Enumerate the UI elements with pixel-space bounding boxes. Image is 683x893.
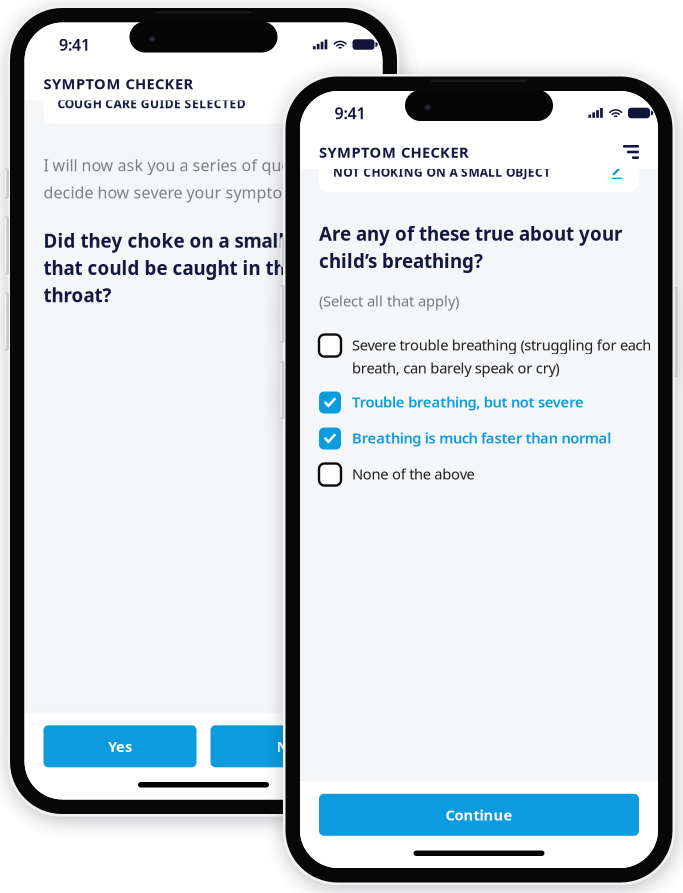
staticText: Yes <box>108 737 132 756</box>
staticText: COUGH CARE GUIDE SELECTED <box>57 95 246 111</box>
button[interactable]: Menu <box>329 69 363 97</box>
staticText: Are any of these true about your child’s… <box>319 221 622 273</box>
button[interactable]: Edit <box>609 164 625 180</box>
staticText: Did they choke on a small object that co… <box>43 228 348 307</box>
button[interactable]: None of the above <box>319 463 663 485</box>
staticText: 9:41 <box>59 34 90 55</box>
button[interactable]: Menu <box>605 138 639 166</box>
button[interactable]: Severe trouble breathing (struggling for… <box>319 335 663 378</box>
button[interactable]: No <box>210 725 363 767</box>
button[interactable]: Breathing is much faster than normal <box>319 427 663 449</box>
staticText: Breathing is much faster than normal <box>352 428 611 447</box>
staticText: No <box>276 737 297 756</box>
staticText: 9:41 <box>334 102 365 124</box>
staticText: NOT CHOKING ON A SMALL OBJECT <box>333 164 550 180</box>
staticText: I will now ask you a series of questions… <box>43 154 356 203</box>
button[interactable]: Continue <box>319 794 639 836</box>
button[interactable]: Yes <box>43 725 196 767</box>
button[interactable]: Trouble breathing, but not severe <box>319 391 663 413</box>
staticText: (Select all that apply) <box>319 291 459 311</box>
staticText: Severe trouble breathing (struggling for… <box>352 335 651 378</box>
staticText: Continue <box>445 805 512 825</box>
staticText: None of the above <box>352 464 474 483</box>
staticText: SYMPTOM CHECKER <box>319 142 469 162</box>
staticText: Trouble breathing, but not severe <box>352 392 584 411</box>
staticText: SYMPTOM CHECKER <box>43 74 193 93</box>
